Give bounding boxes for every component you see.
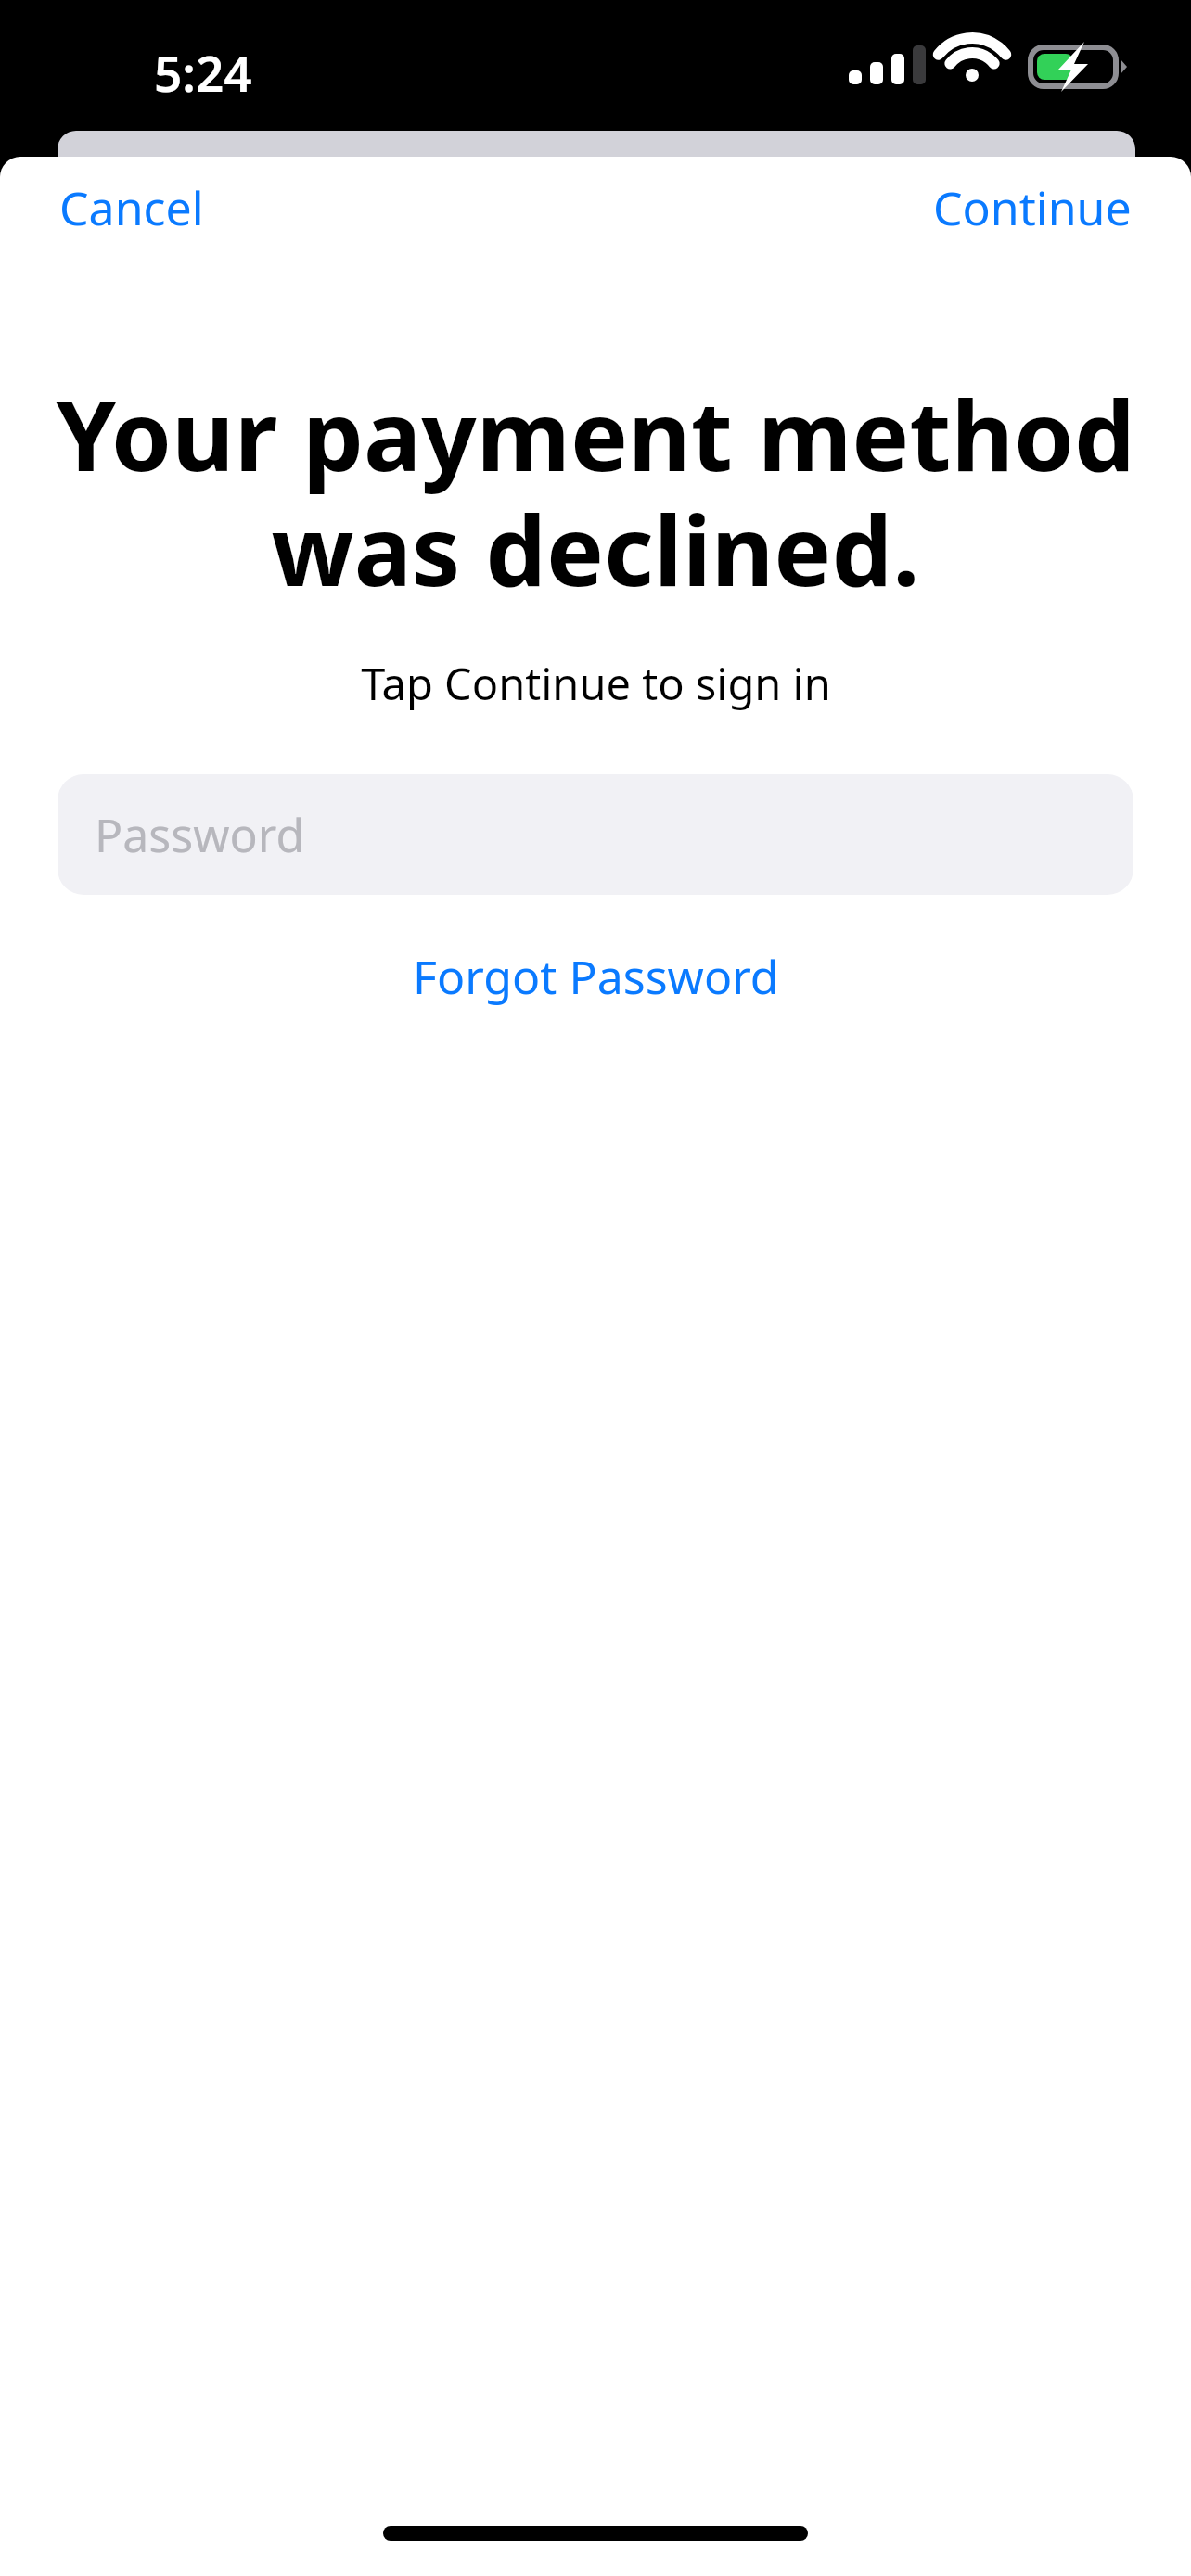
- staticText: 5:24: [154, 39, 252, 106]
- staticText: Forgot Password: [413, 945, 779, 1008]
- staticText: Password: [95, 803, 305, 866]
- staticText: Cancel: [59, 176, 204, 239]
- button[interactable]: Cancel: [0, 159, 228, 256]
- button[interactable]: Forgot Password: [376, 932, 816, 1021]
- other: Status icons: [849, 42, 1146, 90]
- button[interactable]: Continue: [909, 159, 1191, 256]
- staticText: Continue: [933, 176, 1132, 239]
- button[interactable]: Password: [58, 774, 1133, 895]
- staticText: Your payment method was declined.: [54, 368, 1137, 615]
- staticText: Tap Continue to sign in: [361, 654, 831, 713]
